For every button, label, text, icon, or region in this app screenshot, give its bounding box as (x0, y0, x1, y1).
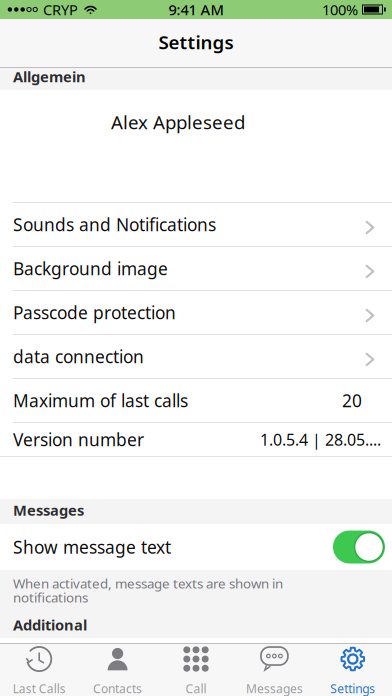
staticText: Contacts (93, 680, 142, 696)
staticText: Settings (330, 680, 375, 696)
staticText: CRYP (43, 0, 78, 19)
button[interactable]: Messages (235, 644, 314, 696)
button[interactable]: Settings (314, 644, 392, 696)
staticText: 1.0.5.4 | 28.05.... (260, 429, 381, 450)
staticText: Maximum of last calls (13, 389, 188, 412)
staticText: Version number (13, 428, 144, 451)
button[interactable]: Sounds and Notifications (0, 203, 392, 246)
button[interactable]: Version number (0, 423, 392, 456)
staticText: Sounds and Notifications (13, 213, 216, 236)
button[interactable]: Call (157, 644, 235, 696)
button[interactable]: Show message text (333, 530, 385, 563)
button[interactable]: Background image (0, 247, 392, 290)
staticText: Messages (13, 500, 84, 520)
staticText: data connection (13, 345, 144, 368)
staticText: 20 (342, 389, 362, 412)
staticText: Background image (13, 257, 168, 280)
staticText: 9:41 AM (168, 0, 223, 19)
button[interactable]: Contacts (78, 644, 157, 696)
staticText: Allgemein (13, 67, 86, 86)
staticText: Show message text (13, 535, 171, 558)
staticText: Last Calls (13, 680, 66, 696)
staticText: Passcode protection (13, 301, 176, 324)
staticText: Settings (158, 30, 233, 54)
button[interactable]: Passcode protection (0, 291, 392, 334)
staticText: Alex Appleseed (111, 110, 245, 134)
staticText: Messages (246, 680, 303, 696)
staticText: Additional (13, 615, 87, 634)
button[interactable]: data connection (0, 335, 392, 378)
staticText: 100% (322, 0, 358, 19)
staticText: When activated, message texts are shown … (13, 574, 283, 592)
button[interactable]: Maximum of last calls (0, 379, 392, 422)
staticText: Call (185, 680, 206, 696)
button[interactable]: Last Calls (0, 644, 78, 696)
staticText: notifications (13, 588, 88, 606)
